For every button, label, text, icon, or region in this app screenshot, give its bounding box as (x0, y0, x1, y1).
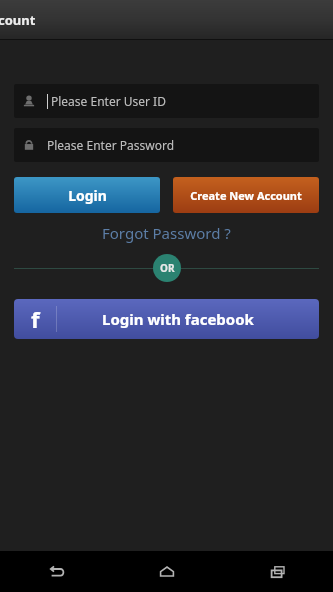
button[interactable]: Back (0, 551, 111, 592)
button[interactable]: Recent apps (222, 551, 333, 592)
button[interactable]: Create New Account (173, 177, 319, 213)
button[interactable]: Please Enter User ID (14, 84, 319, 118)
staticText: Please Enter User ID (51, 93, 166, 109)
staticText: count (0, 11, 36, 29)
staticText: Forgot Password ? (102, 223, 231, 243)
staticText: f (31, 304, 40, 334)
button[interactable]: f (14, 299, 319, 339)
staticText: Login with facebook (102, 309, 254, 329)
button[interactable]: Home (111, 551, 222, 592)
button[interactable]: Forgot Password ? (0, 223, 333, 243)
staticText: Create New Account (190, 188, 302, 203)
staticText: Please Enter Password (47, 137, 175, 153)
button[interactable]: Login (14, 177, 160, 213)
staticText: OR (160, 261, 175, 275)
button[interactable]: Please Enter Password (14, 128, 319, 162)
staticText: Login (68, 186, 107, 205)
